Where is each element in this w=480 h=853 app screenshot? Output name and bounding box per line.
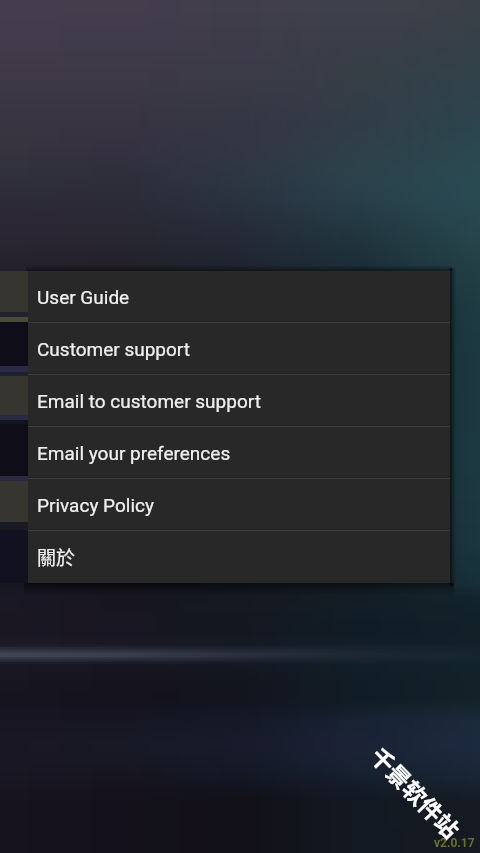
button[interactable]: 關於 bbox=[28, 531, 450, 583]
button[interactable]: Email to customer support bbox=[28, 375, 450, 427]
staticText: Email to customer support bbox=[37, 390, 261, 412]
button[interactable]: Privacy Policy bbox=[28, 479, 450, 531]
staticText: v2.0.17 bbox=[434, 836, 475, 850]
staticText: 關於 bbox=[37, 543, 76, 571]
staticText: 千景软件站 bbox=[365, 739, 468, 844]
staticText: Email your preferences bbox=[37, 442, 231, 464]
button[interactable]: User Guide bbox=[28, 271, 450, 323]
staticText: User Guide bbox=[37, 286, 130, 308]
button[interactable]: Customer support bbox=[28, 323, 450, 375]
button[interactable]: Email your preferences bbox=[28, 427, 450, 479]
staticText: Customer support bbox=[37, 338, 190, 360]
staticText: Privacy Policy bbox=[37, 494, 154, 516]
